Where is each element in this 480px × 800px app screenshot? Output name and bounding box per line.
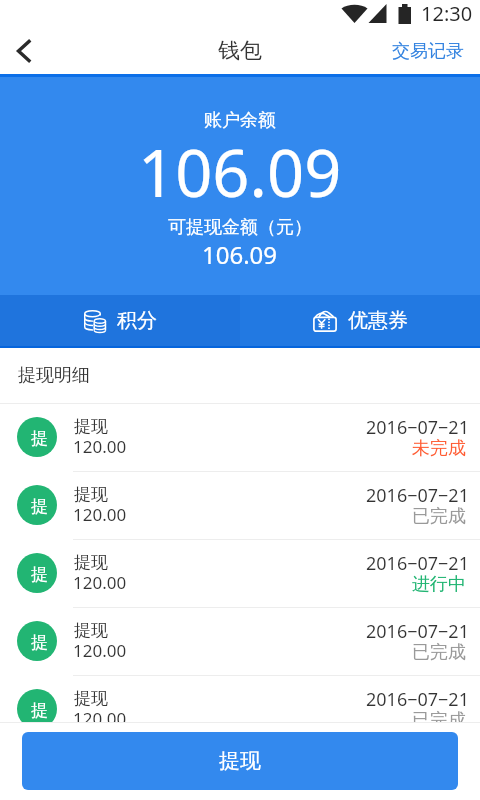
- button[interactable]: 优惠券: [240, 295, 480, 346]
- staticText: 2016−07−21: [366, 415, 469, 440]
- button[interactable]: 提: [0, 608, 480, 675]
- staticText: 12:30: [421, 0, 473, 27]
- staticText: 可提现金额（元）: [168, 216, 312, 239]
- staticText: 未完成: [412, 437, 466, 460]
- staticText: 积分: [117, 308, 157, 333]
- staticText: 120.00: [73, 707, 127, 730]
- staticText: 账户余额: [204, 109, 276, 132]
- staticText: 120.00: [73, 639, 127, 662]
- staticText: 提: [31, 632, 48, 653]
- staticText: 120.00: [73, 435, 127, 458]
- staticText: 提现: [74, 620, 108, 641]
- staticText: 提现明细: [18, 364, 90, 387]
- staticText: 提现: [74, 688, 108, 709]
- staticText: 已完成: [412, 641, 466, 664]
- button[interactable]: 积分: [0, 295, 240, 346]
- staticText: 2016−07−21: [366, 551, 469, 576]
- staticText: 2016−07−21: [366, 687, 469, 712]
- button[interactable]: 提: [0, 676, 480, 743]
- button[interactable]: 提: [0, 404, 480, 471]
- staticText: 106.09: [138, 128, 342, 217]
- button[interactable]: 提: [0, 540, 480, 607]
- staticText: 提: [31, 564, 48, 585]
- staticText: 提现: [74, 552, 108, 573]
- staticText: 提现: [74, 416, 108, 437]
- staticText: 提: [31, 496, 48, 517]
- button[interactable]: 交易记录: [376, 30, 480, 73]
- staticText: 120.00: [73, 571, 127, 594]
- staticText: 提: [31, 700, 48, 721]
- staticText: 2016−07−21: [366, 619, 469, 644]
- button[interactable]: 提现: [22, 732, 458, 790]
- staticText: 钱包: [218, 37, 262, 65]
- staticText: 交易记录: [392, 40, 464, 63]
- staticText: 106.09: [202, 238, 278, 271]
- staticText: 提现: [219, 748, 261, 774]
- staticText: 已完成: [412, 709, 466, 732]
- button[interactable]: Back: [0, 28, 48, 74]
- staticText: 120.00: [73, 503, 127, 526]
- staticText: 提现: [74, 484, 108, 505]
- staticText: 2016−07−21: [366, 483, 469, 508]
- staticText: 已完成: [412, 505, 466, 528]
- staticText: 提: [31, 428, 48, 449]
- staticText: 进行中: [412, 573, 466, 596]
- staticText: 优惠券: [348, 308, 408, 333]
- button[interactable]: 提: [0, 472, 480, 539]
